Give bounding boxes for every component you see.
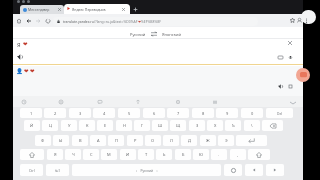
button[interactable]: Ш xyxy=(152,120,168,131)
button[interactable]: Keyboard tool 5 xyxy=(175,99,181,105)
button[interactable]: Keyboard xyxy=(278,55,283,60)
staticText: Японский xyxy=(162,32,181,37)
button[interactable]: Bookmark xyxy=(289,17,296,24)
staticText: Д xyxy=(188,138,191,143)
button[interactable]: Listen translation xyxy=(278,84,283,89)
button[interactable]: Swap languages xyxy=(151,31,157,37)
button[interactable]: Keyboard tool 1 xyxy=(21,99,27,105)
button[interactable]: 6 xyxy=(143,108,165,118)
button[interactable]: Reload xyxy=(44,17,52,25)
button[interactable]: 0 xyxy=(241,108,263,118)
staticText: 1 xyxy=(30,111,33,116)
button[interactable]: К xyxy=(79,120,95,131)
button[interactable]: Ы xyxy=(53,135,69,146)
button[interactable]: New tab xyxy=(132,6,139,13)
button[interactable]: Ъ xyxy=(225,120,241,131)
button[interactable]: М xyxy=(101,149,117,160)
staticText: Щ xyxy=(176,123,181,128)
button[interactable]: Home xyxy=(15,17,23,25)
button[interactable]: Д xyxy=(181,135,197,146)
button[interactable]: Г xyxy=(134,120,150,131)
button[interactable]: Я xyxy=(47,149,63,160)
button[interactable]: Японский xyxy=(161,32,182,37)
button[interactable]: Л xyxy=(163,135,179,146)
button[interactable]: Н xyxy=(116,120,132,131)
button[interactable]: Listen source xyxy=(17,54,23,60)
button[interactable]: П xyxy=(108,135,124,146)
button[interactable]: shift xyxy=(20,149,44,160)
button[interactable]: Ctrl xyxy=(20,164,43,176)
button[interactable] xyxy=(17,0,20,3)
button[interactable]: 5 xyxy=(118,108,140,118)
button[interactable]: nfwd xyxy=(266,164,284,176)
button[interactable]: Т xyxy=(138,149,154,160)
button[interactable]: Ж xyxy=(200,135,216,146)
button[interactable]: home xyxy=(224,164,242,176)
staticText: /?lang=ru-ja&text=%D0%AF xyxy=(94,19,138,24)
staticText: \ xyxy=(251,123,253,128)
button[interactable]: У xyxy=(61,120,77,131)
button[interactable]: Keyboard tool 4 xyxy=(135,99,141,105)
button[interactable]: 9 xyxy=(216,108,238,118)
button[interactable]: , xyxy=(230,149,246,160)
button[interactable] xyxy=(22,0,25,3)
button[interactable]: Р xyxy=(127,135,143,146)
button[interactable]: Ф xyxy=(35,135,51,146)
button[interactable]: Keyboard tool 6 xyxy=(212,99,218,105)
staticText: Мессенджер xyxy=(28,7,50,12)
button[interactable]: 3 xyxy=(69,108,91,118)
button[interactable]: З xyxy=(189,120,205,131)
button[interactable]: 4 xyxy=(93,108,115,118)
button[interactable]: И xyxy=(120,149,136,160)
button[interactable]: В xyxy=(72,135,88,146)
button[interactable]: \ xyxy=(244,120,260,131)
button[interactable]: 2 xyxy=(44,108,66,118)
button[interactable] xyxy=(27,0,30,3)
button[interactable]: bksp xyxy=(262,120,283,131)
button[interactable]: 8 xyxy=(192,108,214,118)
button[interactable]: А xyxy=(90,135,106,146)
button[interactable]: О xyxy=(145,135,161,146)
button[interactable]: Back xyxy=(25,17,33,25)
staticText: Э xyxy=(225,138,228,143)
button[interactable]: ‹ Русский › xyxy=(72,164,221,176)
button[interactable]: nback xyxy=(245,164,263,176)
button[interactable]: shift xyxy=(248,149,270,160)
button[interactable]: Hide keyboard xyxy=(290,100,296,106)
button[interactable]: Яндекс Переводчик xyxy=(64,4,130,14)
button[interactable]: Русский xyxy=(129,32,147,37)
button[interactable]: Ю xyxy=(193,149,209,160)
button[interactable]: Э xyxy=(218,135,234,146)
button[interactable]: Е xyxy=(97,120,113,131)
staticText: К xyxy=(86,123,89,128)
button[interactable]: Х xyxy=(207,120,223,131)
button[interactable]: Keyboard tool 3 xyxy=(97,99,103,105)
staticText: Л xyxy=(170,138,173,143)
button[interactable]: translate.yandex.ru xyxy=(53,17,258,26)
button[interactable]: Ь xyxy=(156,149,172,160)
button[interactable]: Й xyxy=(24,120,40,131)
button[interactable]: №1 xyxy=(46,164,69,176)
button[interactable]: 1 xyxy=(20,108,42,118)
button[interactable]: Щ xyxy=(170,120,186,131)
button[interactable]: Support chat xyxy=(296,68,310,82)
button[interactable]: Del xyxy=(266,108,293,118)
button[interactable]: Clear text xyxy=(288,41,292,45)
staticText: %EF%B8%8F xyxy=(141,19,161,24)
staticText: 5 xyxy=(128,111,131,116)
button[interactable]: Мессенджер xyxy=(20,5,64,14)
button[interactable]: Profile xyxy=(296,17,303,24)
button[interactable]: С xyxy=(83,149,99,160)
button[interactable]: 7 xyxy=(167,108,189,118)
staticText: О xyxy=(151,138,155,143)
button[interactable]: More options xyxy=(303,17,310,24)
button[interactable]: Б xyxy=(175,149,191,160)
button[interactable]: Voice input xyxy=(288,55,293,60)
button[interactable]: Forward xyxy=(34,17,42,25)
button[interactable]: Ц xyxy=(42,120,58,131)
button[interactable]: Copy translation xyxy=(288,84,293,89)
button[interactable]: Ч xyxy=(65,149,81,160)
button[interactable]: Keyboard tool 2 xyxy=(58,99,64,105)
button[interactable]: enter xyxy=(236,135,267,146)
